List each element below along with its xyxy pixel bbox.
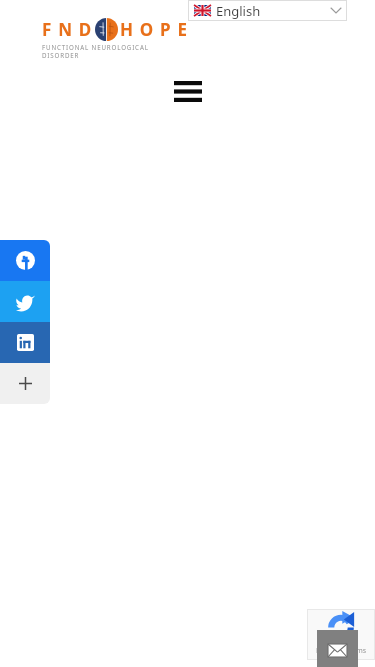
staticText: Terms [346,646,367,656]
button[interactable]: English [188,0,347,21]
button[interactable]: F N D [42,17,189,59]
button[interactable]: Share on Twitter [0,281,50,322]
button[interactable]: Contact us [317,630,358,667]
button[interactable]: Share on Facebook [0,240,50,281]
staticText: F N D [42,18,93,41]
staticText: Privacy [316,646,340,656]
staticText: - [340,646,346,656]
button[interactable]: Share on LinkedIn [0,322,50,363]
staticText: FUNCTIONAL NEUROLOGICAL DISORDER [42,43,172,59]
staticText: H O P E [120,18,189,41]
button[interactable]: More sharing options [0,363,50,404]
staticText: English [216,2,261,20]
button[interactable]: Open menu [169,72,207,110]
